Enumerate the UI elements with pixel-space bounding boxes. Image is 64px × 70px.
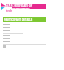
staticText: PARTICIPANT DETAILS [4,18,33,22]
staticText: tech [6,9,13,13]
staticText: CERTIFICATE OF COMPLETION [12,4,46,9]
staticText: TRAIN [6,4,15,8]
